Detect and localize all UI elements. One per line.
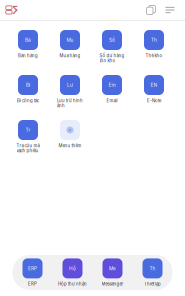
staticText: ERP [28, 265, 37, 271]
staticText: Hộp thư nhận [58, 281, 87, 287]
staticText: ERP [28, 281, 37, 287]
staticText: Lưu trữ hình ảnh [57, 98, 83, 108]
button[interactable]: Th [133, 30, 175, 75]
staticText: EN [150, 82, 157, 88]
button[interactable]: EN [133, 75, 175, 120]
staticText: Bán hàng [18, 53, 38, 58]
staticText: Mu [66, 37, 73, 43]
staticText: Menu thêm [58, 143, 81, 148]
button[interactable]: Me [92, 255, 132, 290]
staticText: Em [108, 82, 115, 88]
staticText: Mua hàng [59, 53, 80, 58]
button[interactable]: Hộ [52, 255, 92, 290]
staticText: Th [149, 265, 155, 271]
staticText: Lư [67, 82, 73, 88]
staticText: Tr [25, 127, 30, 133]
staticText: Email [106, 98, 117, 103]
button[interactable]: Tr [7, 120, 49, 165]
staticText: Tra cứu mã vạch phiếu [16, 143, 39, 153]
staticText: E-Note [147, 98, 161, 103]
button[interactable]: Menu [163, 3, 177, 17]
button[interactable]: Lư [49, 75, 91, 120]
button[interactable]: Đi [7, 75, 49, 120]
button[interactable]: Th [132, 255, 172, 290]
staticText: Đi công tác [17, 98, 39, 103]
button[interactable]: Mu [49, 30, 91, 75]
button[interactable]: Bá [7, 30, 49, 75]
staticText: Hộ [69, 265, 76, 271]
staticText: Đi [26, 82, 30, 88]
button[interactable]: Sổ [91, 30, 133, 75]
staticText: Th [151, 37, 157, 43]
staticText: Sổ dư hàng tồn kho [99, 53, 124, 63]
button[interactable]: Documents [144, 3, 158, 17]
staticText: Thiết lập [144, 281, 161, 287]
button[interactable]: Menu thêm [49, 120, 91, 165]
staticText: Messenger [101, 281, 123, 287]
staticText: Bá [25, 37, 31, 43]
button[interactable]: ERP [12, 255, 52, 290]
staticText: Me [109, 265, 116, 271]
staticText: Sổ [109, 37, 115, 43]
button[interactable]: Em [91, 75, 133, 120]
staticText: Thẻ kho [145, 53, 162, 58]
